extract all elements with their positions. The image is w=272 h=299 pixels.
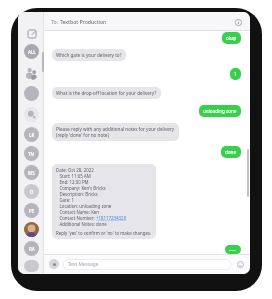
staticText: What is the drop-off location for your d… [56, 90, 157, 96]
staticText: Contact Number: [56, 215, 96, 221]
button[interactable]: done [221, 146, 241, 158]
staticText: Company: Ken's Bricks [56, 185, 106, 191]
staticText: ALL [28, 49, 36, 55]
staticText: End: 12:00 PM [56, 179, 89, 185]
staticText: TN [28, 151, 35, 157]
button[interactable]: unloading zone [199, 105, 241, 117]
staticText: Start: 11:05 AM [56, 173, 91, 179]
button[interactable]: Conversation RA [24, 241, 39, 256]
button[interactable]: Search [24, 107, 39, 122]
button[interactable]: Group [24, 65, 39, 80]
button[interactable]: Conversation [24, 260, 39, 272]
button[interactable]: New message [26, 28, 37, 39]
button[interactable]: Conversation LK [24, 127, 39, 142]
staticText: yes [229, 248, 237, 251]
staticText: done [225, 149, 237, 155]
button[interactable]: Emoji [235, 259, 245, 269]
button[interactable]: Please reply with any additional notes f… [52, 123, 179, 141]
button[interactable]: Conversation [24, 86, 39, 101]
button[interactable]: Conversation ALL [24, 44, 39, 59]
button[interactable]: Details [233, 17, 243, 27]
staticText: Please reply with any additional notes f… [56, 126, 175, 132]
staticText: Which gate is your delivery to? [56, 52, 122, 58]
staticText: LK [29, 132, 35, 138]
button[interactable]: Apps [49, 259, 59, 269]
staticText: Reply 'yes' to confirm or 'no' to make c… [56, 230, 152, 236]
staticText: 1 [234, 71, 237, 77]
button[interactable]: Conversation PE [24, 203, 39, 218]
staticText: Location: unloading zone [56, 203, 112, 209]
staticText: Gate: 1 [56, 197, 74, 203]
button[interactable]: Which gate is your delivery to? [52, 49, 126, 61]
staticText: MS [28, 170, 35, 176]
button[interactable]: Conversation [24, 222, 39, 237]
staticText: Additional Notes: done [56, 221, 107, 227]
staticText: (reply 'done' for no note) [56, 132, 109, 138]
staticText: Text Message [68, 261, 99, 268]
staticText: okay [226, 35, 237, 41]
button[interactable]: What is the drop-off location for your d… [52, 87, 161, 99]
button[interactable]: Conversation D [24, 184, 39, 199]
button[interactable]: Conversation MS [24, 165, 39, 180]
button[interactable]: yes [225, 245, 241, 254]
button[interactable]: Text Message [63, 259, 231, 270]
button[interactable]: 1 [230, 68, 241, 80]
staticText: unloading zone [203, 108, 237, 114]
staticText: Description: Bricks [56, 191, 98, 197]
staticText: D [30, 189, 34, 195]
staticText: PE [29, 208, 35, 214]
staticText: Textbot Production [60, 18, 107, 25]
staticText: +18117234320 [96, 215, 127, 221]
staticText: To: [51, 18, 60, 25]
staticText: Contact Name: Ken [56, 209, 100, 215]
button[interactable]: Date: Oct 28, 2022 [52, 164, 156, 239]
button[interactable]: okay [222, 32, 241, 44]
staticText: Date: Oct 28, 2022 [56, 167, 94, 173]
staticText: RA [29, 246, 35, 252]
button[interactable]: Conversation TN [24, 146, 39, 161]
